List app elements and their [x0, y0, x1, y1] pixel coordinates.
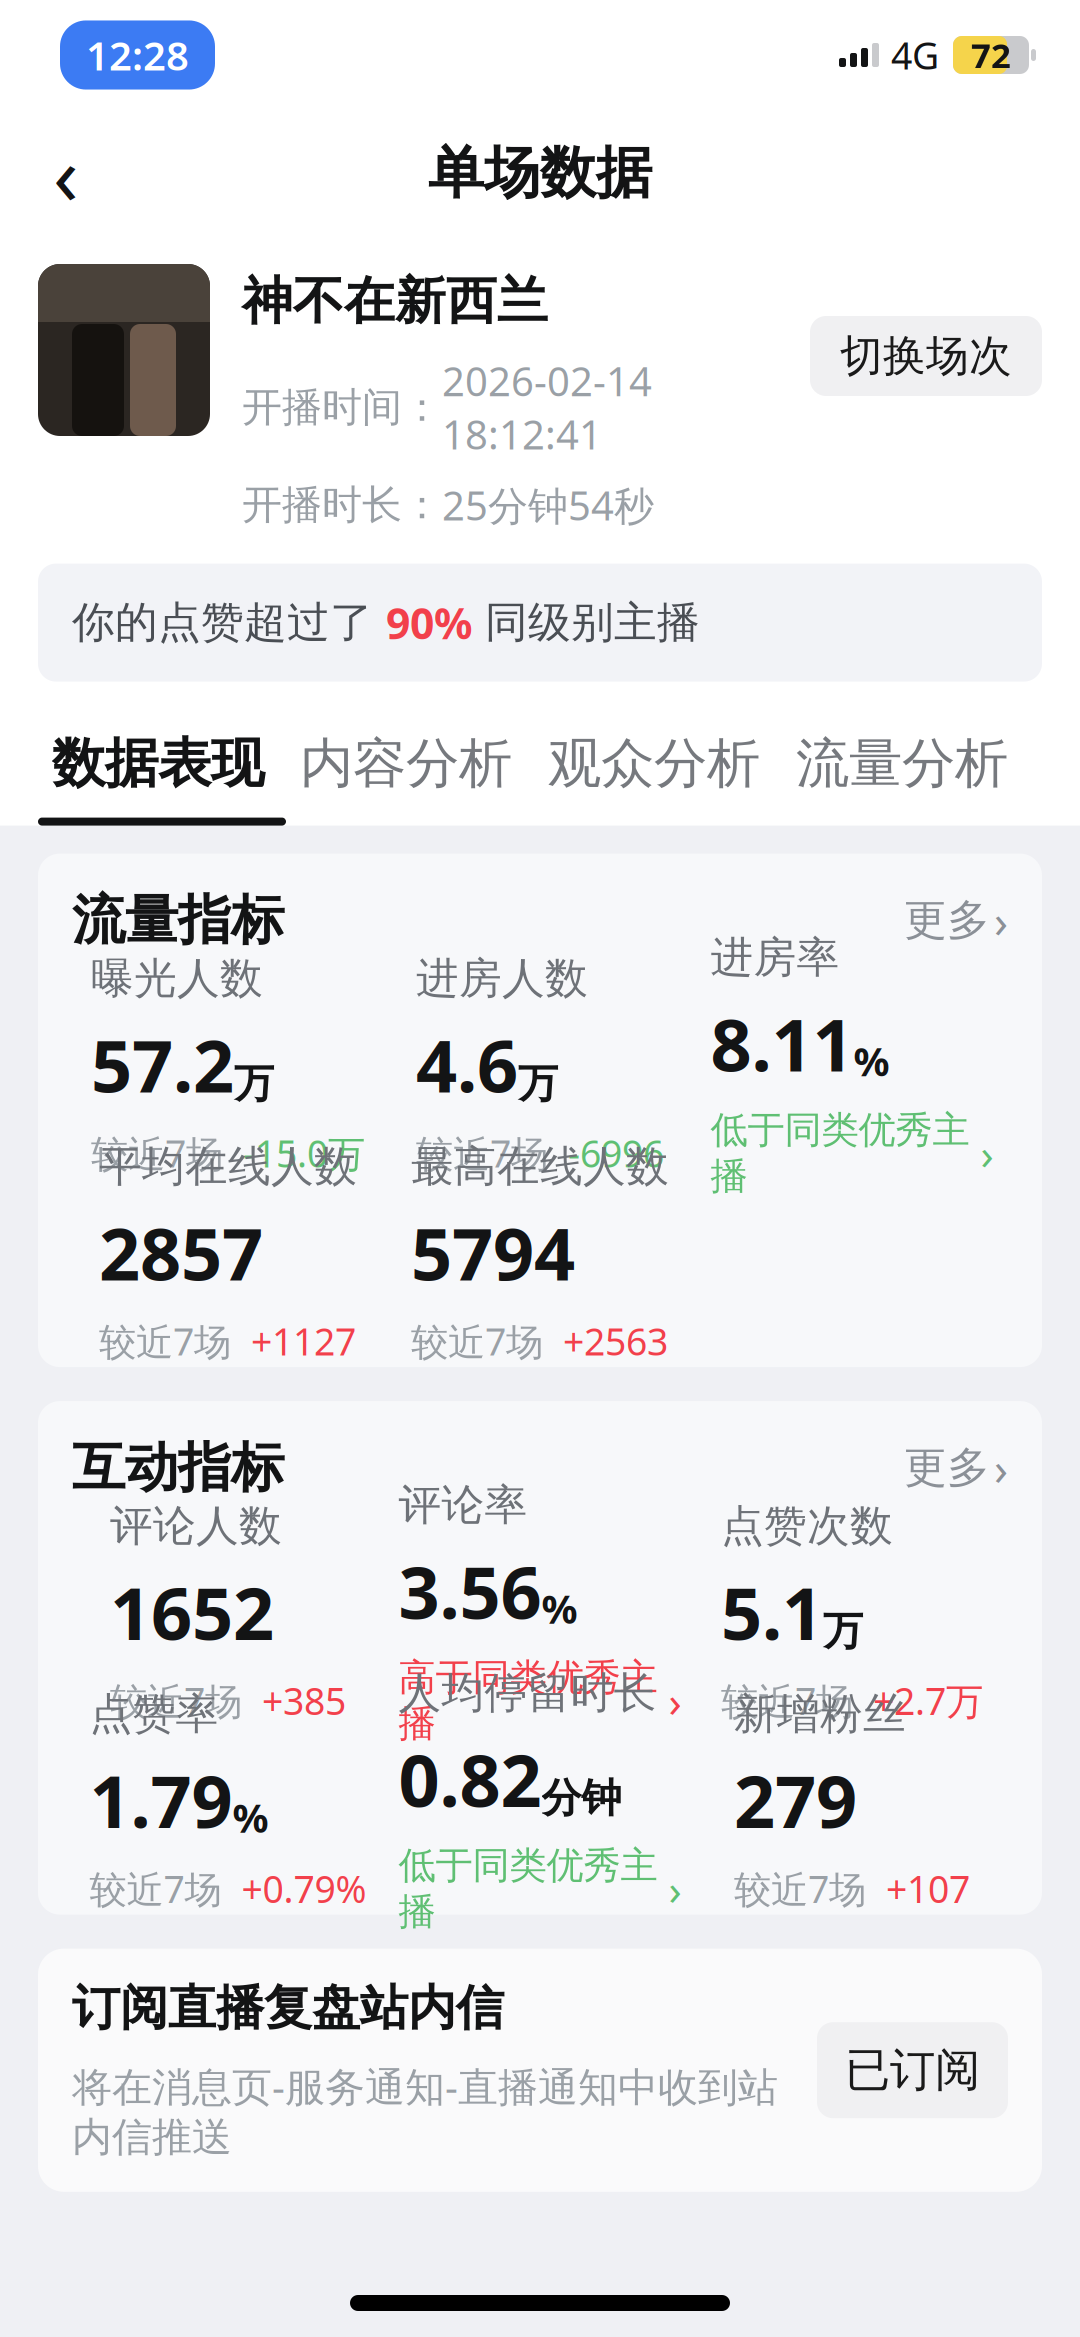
staticText: 较近7场 [110, 1676, 242, 1725]
staticText: +2.7万 [873, 1676, 983, 1725]
staticText: 较近7场 [411, 1316, 543, 1366]
staticText: 点赞次数 [721, 1500, 893, 1552]
staticText: 点赞率 [89, 1688, 218, 1740]
staticText: 进房率 [710, 931, 839, 984]
staticText: % [853, 1034, 889, 1087]
staticText: 25分钟54秒 [442, 478, 654, 532]
staticText: 流量分析 [796, 731, 1008, 796]
button[interactable]: 流量分析 [778, 726, 1026, 802]
staticText: 5794 [411, 1205, 575, 1300]
staticText: 万 [823, 1607, 863, 1656]
button[interactable]: 切换场次 [810, 316, 1042, 396]
staticText: 万 [518, 1059, 558, 1108]
staticText: 更多 [904, 1442, 990, 1494]
button[interactable]: 更多 [904, 890, 1008, 950]
staticText: % [541, 1582, 577, 1635]
staticText: +1127 [251, 1316, 356, 1366]
staticText [548, 1128, 568, 1178]
staticText: 评论率 [398, 1479, 527, 1531]
staticText: 互动指标 [72, 1435, 284, 1501]
staticText: 57.2 [91, 1017, 234, 1112]
staticText: 较近7场 [99, 1316, 231, 1366]
staticText: 已订阅 [845, 2042, 980, 2098]
button[interactable]: 内容分析 [282, 726, 530, 802]
staticText: 开播时间： [242, 383, 442, 432]
staticText: 流量指标 [72, 888, 284, 953]
staticText: +0.79% [241, 1864, 366, 1913]
staticText: 单场数据 [428, 139, 652, 207]
staticText: 你的点赞超过了 [72, 596, 386, 649]
staticText: 数据表现 [52, 731, 264, 796]
button[interactable]: 更多 [904, 1438, 1008, 1498]
staticText [853, 1676, 873, 1725]
staticText: 较近7场 [89, 1864, 221, 1913]
staticText: 神不在新西兰 [242, 270, 548, 332]
staticText: 5.1 [721, 1564, 823, 1660]
staticText: 279 [734, 1752, 857, 1848]
staticText: 较近7场 [91, 1128, 223, 1178]
staticText: › [969, 1125, 993, 1181]
staticText: 同级别主播 [472, 596, 700, 649]
staticText: -6996 [568, 1128, 664, 1178]
staticText: 曝光人数 [91, 952, 263, 1005]
staticText: 低于同类优秀主播 [398, 1843, 657, 1934]
staticText: 低于同类优秀主播 [710, 1107, 969, 1199]
staticText: 平均在线人数 [99, 1140, 357, 1193]
staticText: 较近7场 [721, 1676, 853, 1725]
staticText: 将在消息页-服务通知-直播通知中收到站内信推送 [72, 2060, 778, 2162]
staticText: 8.11 [710, 996, 853, 1091]
staticText: › [657, 1672, 681, 1729]
staticText: 万 [234, 1059, 274, 1108]
staticText: 1652 [110, 1564, 274, 1660]
staticText: 进房人数 [416, 952, 588, 1005]
staticText: 开播时长： [242, 480, 442, 530]
staticText: 较近7场 [416, 1128, 548, 1178]
staticText: +107 [886, 1864, 970, 1913]
staticText [223, 1128, 243, 1178]
staticText: 切换场次 [840, 330, 1012, 382]
staticText: 人均停留时长 [398, 1667, 656, 1719]
staticText: › [994, 890, 1008, 950]
staticText: 最高在线人数 [411, 1140, 669, 1193]
staticText: % [232, 1791, 268, 1844]
staticText: 4G [891, 30, 939, 80]
button[interactable]: Back [18, 125, 114, 221]
staticText: ‹ [53, 118, 79, 228]
staticText: 观众分析 [548, 731, 760, 796]
staticText: 较近7场 [734, 1864, 866, 1913]
staticText: 3.56 [398, 1543, 541, 1639]
staticText: +2563 [563, 1316, 668, 1366]
staticText: 72 [971, 32, 1011, 78]
button[interactable]: 已订阅 [817, 2022, 1008, 2118]
staticText: 4.6 [416, 1017, 518, 1112]
staticText: 2857 [99, 1205, 263, 1300]
staticText: -15.0万 [243, 1128, 365, 1178]
button[interactable]: 观众分析 [530, 726, 778, 802]
staticText: 新增粉丝 [734, 1688, 906, 1740]
staticText: +385 [262, 1676, 346, 1725]
staticText: 更多 [904, 894, 990, 946]
staticText: 分钟 [541, 1774, 621, 1823]
staticText: 12:28 [86, 28, 189, 81]
button[interactable]: 数据表现 [34, 726, 282, 802]
staticText: 评论人数 [110, 1500, 282, 1552]
staticText: › [994, 1438, 1008, 1498]
staticText: 内容分析 [300, 731, 512, 796]
staticText: › [657, 1860, 681, 1917]
staticText: 高于同类优秀主播 [398, 1655, 657, 1746]
staticText: 90% [386, 594, 472, 651]
staticText: 2026-02-14 18:12:41 [442, 354, 652, 460]
staticText: 0.82 [398, 1731, 541, 1827]
staticText: 订阅直播复盘站内信 [72, 1979, 504, 2038]
staticText: 1.79 [89, 1752, 232, 1848]
